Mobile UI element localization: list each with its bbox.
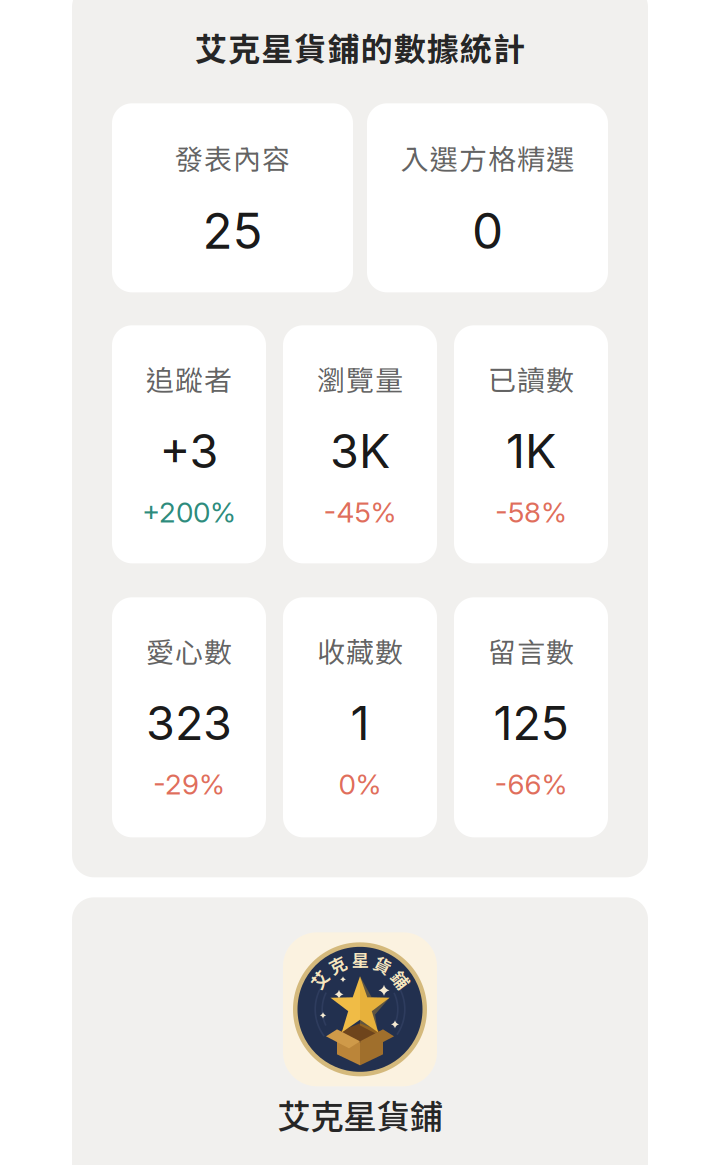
staticText: 貨 [374, 952, 391, 977]
staticText: -29% [153, 767, 225, 801]
staticText: 1K [506, 423, 556, 479]
staticText: 愛心數 [146, 630, 232, 671]
staticText: 艾 [311, 967, 328, 992]
staticText: 追蹤者 [146, 358, 232, 399]
button[interactable]: 愛心數 [112, 597, 266, 837]
staticText: 已讀數 [488, 358, 574, 399]
staticText: 收藏數 [317, 630, 403, 671]
staticText: 1 [350, 695, 369, 751]
staticText: 入選方格精選 [401, 137, 574, 178]
staticText: 鋪 [392, 967, 409, 992]
staticText: 25 [202, 201, 262, 261]
staticText: 艾克星貨鋪的數據統計 [195, 24, 525, 70]
staticText: -58% [495, 495, 567, 529]
button[interactable]: 已讀數 [454, 325, 608, 563]
staticText: -66% [494, 767, 567, 801]
button[interactable]: 收藏數 [283, 597, 437, 837]
staticText: 克 [329, 952, 346, 977]
staticText: 0% [338, 767, 381, 801]
staticText: 125 [493, 695, 568, 751]
staticText: 艾克星貨鋪 [277, 1090, 442, 1139]
staticText: 323 [146, 695, 232, 751]
button[interactable]: 留言數 [454, 597, 608, 837]
staticText: +200% [142, 495, 236, 529]
staticText: 留言數 [488, 630, 574, 671]
staticText: 0 [472, 201, 503, 261]
button[interactable]: 追蹤者 [112, 325, 266, 563]
staticText: 瀏覽量 [317, 358, 403, 399]
staticText: 星 [351, 947, 368, 972]
button[interactable]: 瀏覽量 [283, 325, 437, 563]
staticText: 3K [330, 423, 390, 479]
staticText: +3 [159, 423, 218, 479]
staticText: -45% [323, 495, 396, 529]
staticText: 發表內容 [175, 137, 290, 178]
button[interactable]: 入選方格精選 [367, 103, 608, 292]
button[interactable]: 發表內容 [112, 103, 353, 292]
